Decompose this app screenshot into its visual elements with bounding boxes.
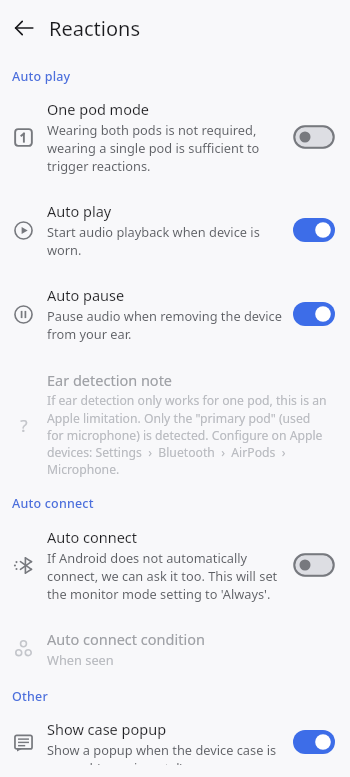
button[interactable]: Auto connect condition xyxy=(0,615,350,678)
button[interactable]: Auto pause xyxy=(290,297,337,331)
staticText: Auto connect xyxy=(12,495,94,512)
staticText: Auto connect xyxy=(47,527,138,547)
staticText: ? xyxy=(20,414,28,433)
button[interactable]: Auto play xyxy=(0,187,350,271)
staticText: Reactions xyxy=(49,15,140,42)
staticText: When seen xyxy=(47,651,114,668)
staticText: Auto play xyxy=(47,201,112,221)
button[interactable]: Auto connect xyxy=(0,512,350,615)
staticText: Ear detection note xyxy=(47,370,173,390)
button[interactable]: ? xyxy=(0,355,350,485)
staticText: If Android does not automatically connec… xyxy=(47,549,282,603)
button[interactable]: One pod mode xyxy=(290,120,337,154)
staticText: Auto play xyxy=(12,68,71,85)
staticText: Wearing both pods is not required, weari… xyxy=(47,121,282,175)
button[interactable]: Show case popup xyxy=(0,705,350,777)
button[interactable]: Auto pause xyxy=(0,271,350,355)
button[interactable]: Show case popup xyxy=(290,725,337,759)
staticText: Start audio playback when device is worn… xyxy=(47,223,282,259)
button[interactable]: Back xyxy=(8,12,40,44)
button[interactable]: One pod mode xyxy=(0,85,350,187)
staticText: Auto pause xyxy=(47,285,125,305)
staticText: Auto connect condition xyxy=(47,629,205,649)
staticText: Show case popup xyxy=(47,719,167,739)
staticText: Other xyxy=(12,688,48,705)
button[interactable]: Auto connect xyxy=(290,548,337,582)
staticText: Pause audio when removing the device fro… xyxy=(47,307,282,343)
staticText: Show a popup when the device case is ope… xyxy=(47,741,282,765)
staticText: If ear detection only works for one pod,… xyxy=(47,392,329,477)
staticText: One pod mode xyxy=(47,99,150,119)
button[interactable]: Auto play xyxy=(290,213,337,247)
